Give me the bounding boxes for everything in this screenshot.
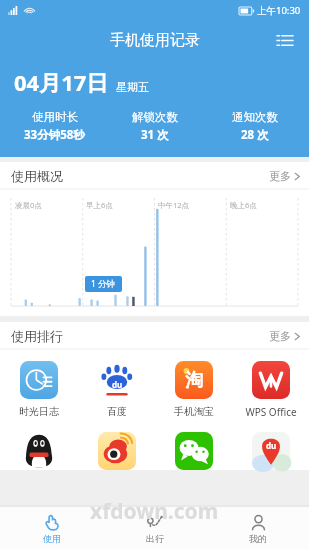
button[interactable]: 更多 [269, 329, 300, 343]
staticText: 凌晨0点 [15, 200, 42, 210]
staticText: 1 分钟 [91, 278, 116, 290]
staticText: du [266, 440, 277, 451]
button[interactable]: 使用时长 [4, 110, 105, 143]
staticText: 31 次 [141, 127, 169, 143]
staticText: 33分钟58秒 [24, 127, 85, 143]
button[interactable]: 解锁次数 [105, 110, 205, 143]
staticText: 使用概况 [11, 168, 63, 184]
button[interactable] [78, 432, 155, 470]
staticText: 使用时长 [32, 110, 78, 124]
staticText: 使用 [43, 533, 61, 544]
button[interactable]: WPS Office [232, 361, 309, 419]
staticText: 使用排行 [11, 328, 63, 344]
button[interactable]: du [232, 432, 309, 470]
button[interactable]: 淘 [155, 361, 232, 418]
staticText: 我的 [249, 533, 267, 544]
staticText: 出行 [146, 533, 164, 544]
button[interactable]: Menu [270, 25, 300, 55]
staticText: 星期五 [116, 80, 149, 94]
staticText: du [112, 379, 123, 390]
button[interactable]: 我的 [206, 507, 309, 550]
staticText: 通知次数 [232, 110, 278, 124]
staticText: 更多 [269, 169, 291, 183]
button[interactable]: du [78, 361, 155, 418]
button[interactable] [155, 432, 232, 470]
staticText: 04月17日 [14, 67, 109, 97]
staticText: 上午10:30 [257, 4, 301, 17]
button[interactable]: 通知次数 [205, 110, 305, 143]
button[interactable]: 使用 [0, 507, 103, 550]
staticText: 中午12点 [158, 200, 190, 210]
button[interactable] [0, 432, 78, 470]
staticText: WPS Office [245, 405, 297, 419]
staticText: 手机使用记录 [110, 31, 200, 50]
staticText: 更多 [269, 329, 291, 343]
staticText: 晚上6点 [230, 200, 257, 210]
staticText: 28 次 [241, 127, 269, 143]
staticText: 百度 [107, 405, 127, 418]
staticText: xfdown.com [90, 497, 219, 526]
staticText: 解锁次数 [132, 110, 178, 124]
staticText: 早上6点 [86, 200, 113, 210]
button[interactable]: 更多 [269, 169, 300, 183]
button[interactable]: 出行 [103, 507, 206, 550]
staticText: 淘 [185, 369, 203, 392]
staticText: 手机淘宝 [174, 405, 214, 418]
staticText: 时光日志 [19, 405, 59, 418]
button[interactable]: 时光日志 [0, 361, 78, 418]
